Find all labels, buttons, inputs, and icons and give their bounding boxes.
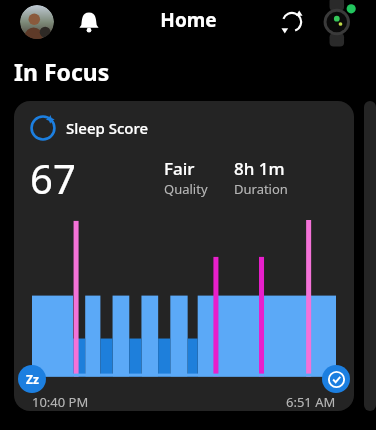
staticText: 8h 1m	[234, 157, 285, 180]
button[interactable]	[364, 101, 376, 411]
staticText: 67	[30, 151, 76, 205]
staticText: Fair	[164, 157, 195, 180]
button[interactable]: Sleep start	[18, 365, 46, 393]
staticText: Sleep Score	[66, 118, 149, 138]
staticText: Home	[160, 7, 217, 33]
staticText: Zz	[26, 371, 39, 387]
staticText: 10:40 PM	[32, 393, 89, 411]
button[interactable]: Profile	[20, 5, 54, 39]
button[interactable]: Notifications	[72, 5, 106, 39]
staticText: Quality	[164, 180, 208, 198]
button[interactable]: Wake time	[322, 365, 350, 393]
staticText: In Focus	[14, 56, 110, 87]
staticText: Duration	[234, 180, 288, 198]
button[interactable]: Sleep Score	[14, 101, 354, 411]
button[interactable]: Watch	[318, 2, 358, 42]
button[interactable]: Sync	[275, 5, 309, 39]
staticText: 6:51 AM	[286, 393, 336, 411]
